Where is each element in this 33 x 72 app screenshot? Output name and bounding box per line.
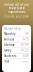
staticText: Choose your plan — [4, 15, 29, 18]
staticText: $49 — [23, 54, 29, 58]
staticText: Family — [4, 49, 11, 52]
button[interactable]: Monthly — [2, 31, 31, 37]
staticText: $9 — [25, 32, 29, 36]
staticText: Monthly — [4, 32, 15, 36]
staticText: $79 — [23, 38, 29, 41]
staticText: Students — [4, 54, 16, 58]
staticText: Unlock all of our most loved experiences — [4, 3, 29, 14]
staticText: Free — [23, 60, 29, 63]
staticText: $199 — [21, 43, 29, 47]
staticText: $129 — [21, 49, 29, 52]
button[interactable]: Lifetime — [2, 42, 31, 48]
staticText: Annual — [4, 38, 14, 41]
staticText: Trial — [4, 60, 9, 63]
button[interactable]: Annual — [2, 37, 31, 42]
button[interactable]: Trial — [2, 59, 31, 64]
staticText: Lifetime — [4, 43, 15, 47]
button[interactable]: Students — [2, 53, 31, 59]
staticText: Membership — [4, 27, 21, 30]
button[interactable]: Family — [2, 48, 31, 53]
